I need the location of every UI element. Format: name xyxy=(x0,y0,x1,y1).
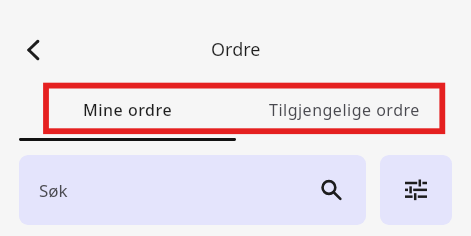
button[interactable]: Søk xyxy=(19,155,366,225)
staticText: Mine ordre xyxy=(83,99,173,121)
button[interactable]: Filter xyxy=(380,155,452,225)
staticText: Søk xyxy=(39,179,68,202)
button[interactable]: Mine ordre xyxy=(19,83,236,137)
staticText: Ordre xyxy=(211,37,261,62)
staticText: Tilgjengelige ordre xyxy=(269,99,420,121)
button[interactable]: Back xyxy=(11,27,56,72)
button[interactable]: Tilgjengelige ordre xyxy=(236,83,453,137)
